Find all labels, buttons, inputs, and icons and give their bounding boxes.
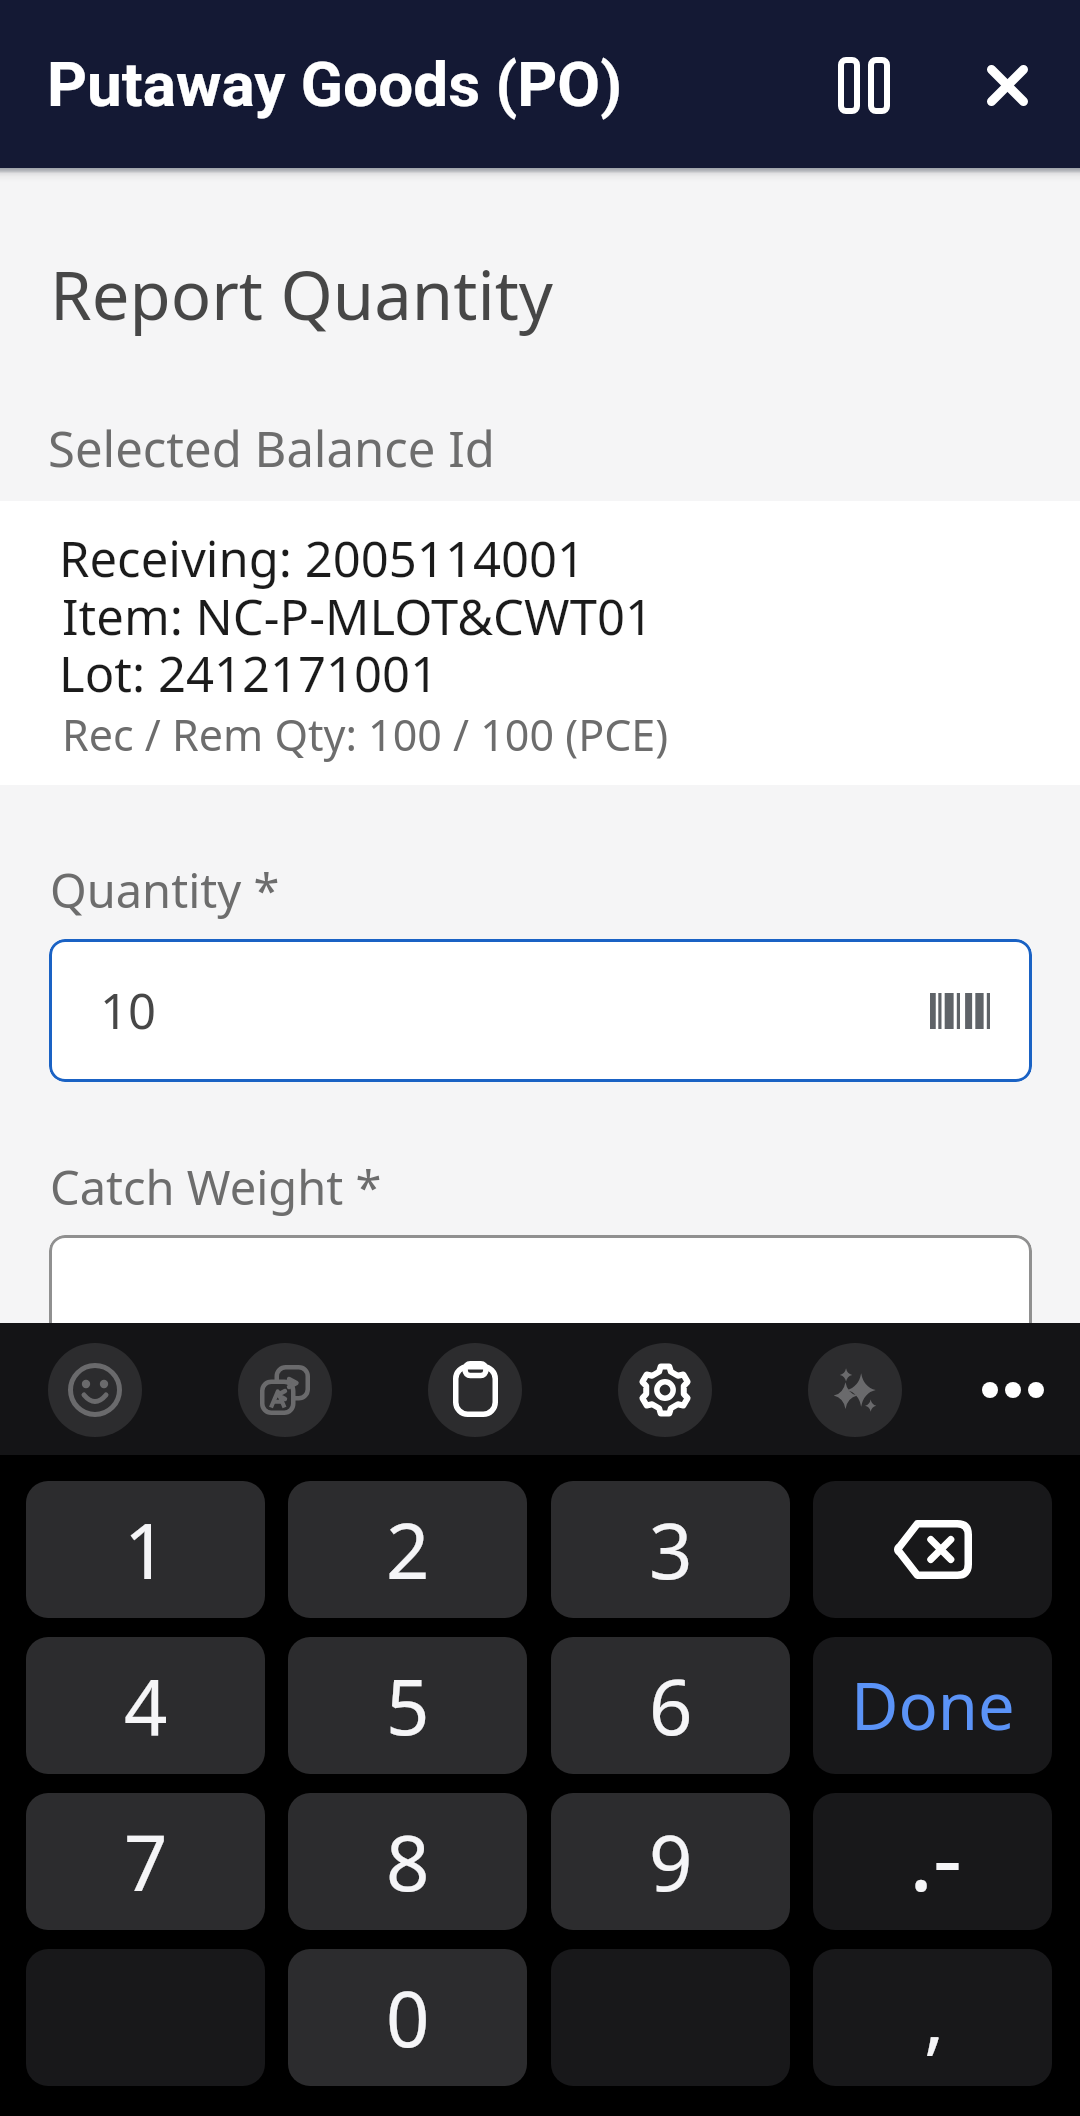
staticText: Quantity * [50,858,280,922]
button[interactable]: 3 [551,1481,790,1618]
staticText: 1 [124,1498,168,1602]
staticText: Catch Weight * [50,1155,382,1219]
staticText: Putaway Goods (PO) [47,48,622,121]
button[interactable]: 4 [26,1637,265,1774]
button[interactable]: Backspace [813,1481,1052,1618]
staticText: Done [851,1661,1015,1750]
button[interactable]: 9 [551,1793,790,1930]
staticText: Rec / Rem Qty: 100 / 100 (PCE) [62,705,669,764]
button[interactable]: More options [966,1343,1060,1437]
button[interactable]: , [813,1949,1052,2086]
staticText: Receiving: 2005114001 [59,525,586,592]
button[interactable]: 0 [288,1949,527,2086]
staticText: .- [909,1795,963,1918]
button[interactable]: Translate [238,1343,332,1437]
button[interactable]: Close [947,25,1067,145]
staticText: 4 [124,1654,168,1758]
staticText: Item: NC-P-MLOT&CWT01 [62,583,653,650]
button[interactable]: Split screen [804,23,924,143]
button[interactable] [49,1235,1032,1378]
staticText: Selected Balance Id [48,415,495,482]
button[interactable]: 1 [26,1481,265,1618]
staticText: 2 [386,1498,430,1602]
staticText: 6 [649,1654,693,1758]
button[interactable]: Clipboard [428,1343,522,1437]
staticText: 9 [649,1810,693,1914]
staticText: Lot: 2412171001 [59,640,439,707]
button[interactable]: Magic compose [808,1343,902,1437]
button[interactable] [0,501,1080,785]
button[interactable]: 8 [288,1793,527,1930]
button[interactable]: .- [813,1793,1052,1930]
staticText: 10 [100,977,157,1044]
staticText: 3 [649,1498,693,1602]
button[interactable]: 5 [288,1637,527,1774]
staticText: 7 [124,1810,168,1914]
staticText: Report Quantity [50,248,554,339]
staticText: 8 [386,1810,430,1914]
button[interactable]: 7 [26,1793,265,1930]
staticText: 0 [386,1966,430,2070]
button[interactable]: 6 [551,1637,790,1774]
button[interactable]: Emoji [48,1343,142,1437]
button[interactable]: Done [813,1637,1052,1774]
staticText: 5 [386,1654,430,1758]
button[interactable]: 10 [49,939,1032,1082]
staticText: , [924,1965,945,2069]
button[interactable]: Settings [618,1343,712,1437]
button[interactable]: 2 [288,1481,527,1618]
